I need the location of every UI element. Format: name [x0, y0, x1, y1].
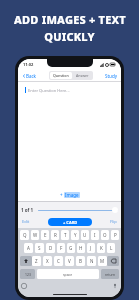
staticText: E [44, 232, 47, 238]
staticText: J [90, 245, 92, 251]
staticText: + CARD [63, 220, 78, 225]
staticText: C [57, 258, 60, 264]
button[interactable]: C [54, 256, 63, 266]
button[interactable]: M [98, 256, 107, 266]
button[interactable]: B [76, 256, 85, 266]
button[interactable]: X [43, 256, 52, 266]
staticText: Edit [22, 219, 30, 224]
staticText: L [110, 245, 113, 251]
button[interactable]: W [31, 230, 39, 240]
button[interactable]: E [41, 230, 49, 240]
button[interactable]: S [35, 243, 44, 253]
button[interactable]: R [51, 230, 59, 240]
button[interactable]: + [18, 189, 121, 201]
staticText: X [46, 258, 49, 264]
staticText: V [68, 258, 71, 264]
button[interactable]: P [111, 230, 119, 240]
staticText: QUICKLY [44, 29, 95, 44]
staticText: Q [23, 232, 27, 238]
button[interactable]: T [61, 230, 69, 240]
staticText: S [38, 245, 41, 251]
staticText: N [90, 258, 94, 264]
staticText: F [60, 245, 63, 251]
button[interactable]: Shift [20, 256, 32, 266]
button[interactable]: Question [50, 72, 72, 79]
button[interactable]: Flip [109, 218, 118, 225]
staticText: Answer [76, 73, 89, 78]
staticText: T [64, 232, 67, 238]
staticText: I [94, 232, 96, 238]
staticText: Y [74, 232, 77, 238]
button[interactable]: 123 [20, 269, 35, 279]
button[interactable]: V [65, 256, 74, 266]
staticText: 11:02 [23, 62, 34, 67]
button[interactable]: Study [104, 72, 118, 80]
button[interactable]: return [101, 269, 119, 279]
staticText: Flip [110, 219, 117, 224]
staticText: return [105, 272, 116, 277]
staticText: P [114, 232, 117, 238]
staticText: A [27, 245, 30, 251]
button[interactable]: D [46, 243, 55, 253]
button[interactable]: Y [71, 230, 79, 240]
button[interactable]: space [37, 269, 99, 279]
button[interactable]: Back [21, 72, 38, 80]
button[interactable]: U [81, 230, 89, 240]
button[interactable]: G [67, 243, 75, 253]
button[interactable]: I [91, 230, 99, 240]
staticText: Back [26, 73, 37, 79]
staticText: K [100, 245, 103, 251]
staticText: R [54, 232, 57, 238]
button[interactable]: Backspace [107, 256, 119, 266]
button[interactable]: Microphone [112, 283, 118, 289]
button[interactable]: F [57, 243, 65, 253]
button[interactable]: O [101, 230, 109, 240]
button[interactable]: A [24, 243, 33, 253]
staticText: O [103, 232, 107, 238]
button[interactable]: Z [32, 256, 41, 266]
button[interactable]: K [97, 243, 105, 253]
button[interactable]: L [107, 243, 115, 253]
button[interactable]: + CARD [48, 218, 92, 226]
button[interactable]: N [87, 256, 96, 266]
staticText: Study [105, 73, 117, 79]
staticText: H [79, 245, 83, 251]
staticText: G [69, 245, 73, 251]
staticText: B [79, 258, 82, 264]
button[interactable]: Enter Question Here... [22, 85, 117, 95]
staticText: Z [35, 258, 38, 264]
staticText: 1 of 1 [21, 207, 34, 213]
button[interactable]: Emoji [21, 283, 27, 289]
staticText: space [63, 272, 73, 277]
staticText: Image [65, 192, 79, 198]
staticText: Enter Question Here... [28, 88, 70, 93]
staticText: D [49, 245, 53, 251]
button[interactable]: Edit [21, 218, 31, 225]
staticText: + [60, 192, 64, 198]
staticText: ADD IMAGES + TEXT [14, 12, 126, 27]
staticText: Question [53, 73, 69, 78]
button[interactable]: Answer [73, 72, 92, 79]
button[interactable]: J [87, 243, 95, 253]
staticText: M [100, 258, 105, 264]
staticText: W [33, 232, 38, 238]
button[interactable]: Q [20, 230, 29, 240]
staticText: U [83, 232, 87, 238]
staticText: 123 [25, 272, 31, 277]
button[interactable]: H [77, 243, 85, 253]
